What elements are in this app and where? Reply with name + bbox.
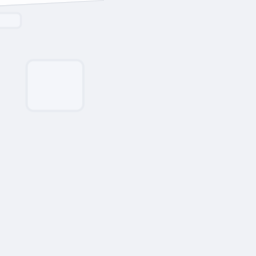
button[interactable]: Back <box>0 13 21 28</box>
button[interactable]: Card <box>26 60 83 111</box>
